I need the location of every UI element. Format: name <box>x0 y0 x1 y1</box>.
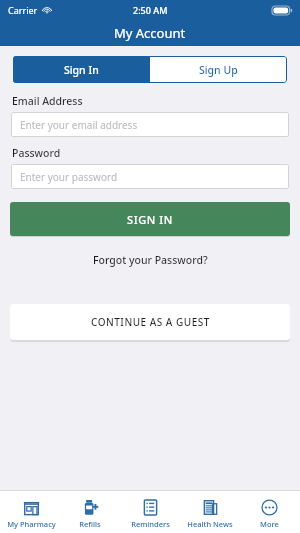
staticText: Refills <box>79 519 101 529</box>
staticText: Password <box>12 146 61 160</box>
staticText: Sign Up <box>199 63 238 77</box>
button[interactable]: Sign Up <box>150 56 287 83</box>
button[interactable]: Refills <box>61 490 119 533</box>
staticText: My Account <box>114 24 186 42</box>
staticText: Enter your email address <box>20 118 138 132</box>
staticText: More <box>260 519 279 529</box>
staticText: 2:50 AM <box>133 4 168 16</box>
staticText: Enter your password <box>20 170 118 184</box>
button[interactable]: CONTINUE AS A GUEST <box>10 304 290 340</box>
staticText: Forgot your Password? <box>93 253 208 267</box>
button[interactable]: Enter your email address <box>11 112 289 137</box>
staticText: Email Address <box>12 94 83 108</box>
button[interactable]: Sign In <box>13 56 150 83</box>
button[interactable]: Enter your password <box>11 164 289 189</box>
button[interactable]: My Pharmacy <box>2 490 60 533</box>
staticText: Carrier <box>8 4 38 16</box>
staticText: SIGN IN <box>127 212 173 227</box>
staticText: My Pharmacy <box>7 519 56 529</box>
button[interactable]: SIGN IN <box>10 202 290 236</box>
staticText: CONTINUE AS A GUEST <box>91 315 210 329</box>
button[interactable]: More <box>240 490 298 533</box>
staticText: Health News <box>187 519 233 529</box>
button[interactable]: Health News <box>181 490 239 533</box>
staticText: Sign In <box>64 63 99 77</box>
button[interactable]: Reminders <box>121 490 179 533</box>
staticText: Reminders <box>131 519 170 529</box>
button[interactable]: Forgot your Password? <box>83 250 218 270</box>
